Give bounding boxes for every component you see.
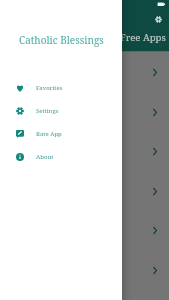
button[interactable]: App Name xyxy=(0,92,169,132)
button[interactable]: Settings xyxy=(155,16,162,23)
button[interactable]: App Name xyxy=(0,171,169,211)
button[interactable]: Favorites xyxy=(0,76,122,99)
staticText: Free Apps xyxy=(120,31,166,44)
button[interactable]: App Name xyxy=(0,210,169,250)
button[interactable]: About xyxy=(0,145,122,168)
staticText: About xyxy=(36,153,54,161)
button[interactable]: App Name xyxy=(0,131,169,171)
button[interactable]: Settings xyxy=(0,99,122,122)
staticText: Settings xyxy=(36,107,59,115)
staticText: Rate App xyxy=(36,130,62,138)
staticText: App Name xyxy=(14,144,64,158)
staticText: Catholic Blessings xyxy=(19,33,104,47)
button[interactable]: Rate App xyxy=(0,122,122,145)
staticText: App Name xyxy=(14,105,64,119)
staticText: Favorites xyxy=(36,84,63,92)
button[interactable]: App Name xyxy=(0,52,169,92)
button[interactable]: App Name xyxy=(0,250,169,290)
